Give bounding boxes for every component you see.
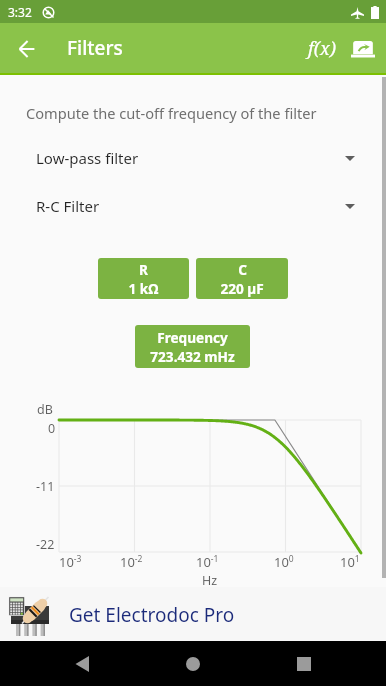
staticText: Compute the cut-off frequency of the fil… (26, 103, 317, 123)
button[interactable]: Low-pass filter (36, 143, 350, 173)
staticText: 1 kΩ (128, 279, 159, 298)
button[interactable]: Navigate up (9, 31, 45, 67)
button[interactable]: Present to screen (341, 27, 385, 71)
staticText: -22 (36, 536, 55, 553)
staticText: 10-3 (59, 553, 82, 571)
button[interactable]: Back (59, 641, 104, 686)
staticText: C (238, 260, 247, 279)
button[interactable]: C (196, 258, 288, 299)
staticText: R (139, 260, 148, 279)
staticText: 0 (48, 420, 56, 437)
staticText: Filters (67, 35, 123, 61)
staticText: dB (37, 401, 53, 418)
button[interactable]: R-C Filter (36, 191, 350, 221)
staticText: f(x) (308, 36, 337, 61)
staticText: Low-pass filter (36, 148, 139, 168)
staticText: Frequency (157, 328, 228, 347)
button[interactable]: Home (170, 641, 215, 686)
staticText: 101 (340, 553, 360, 571)
staticText: 220 µF (220, 279, 264, 298)
staticText: 723.432 mHz (150, 347, 235, 366)
staticText: R-C Filter (36, 196, 100, 216)
staticText: 3:32 (8, 4, 32, 20)
button[interactable]: R (98, 258, 189, 299)
button[interactable]: Recent apps (281, 641, 326, 686)
staticText: Get Electrodoc Pro (69, 602, 235, 628)
staticText: 10-2 (120, 553, 143, 571)
staticText: 100 (274, 553, 294, 571)
button[interactable]: Get Electrodoc Pro (0, 587, 386, 641)
staticText: -11 (36, 478, 55, 495)
button[interactable]: Frequency (135, 325, 250, 368)
staticText: Hz (202, 572, 218, 589)
button[interactable]: Formula (300, 26, 344, 70)
staticText: 10-1 (196, 553, 219, 571)
